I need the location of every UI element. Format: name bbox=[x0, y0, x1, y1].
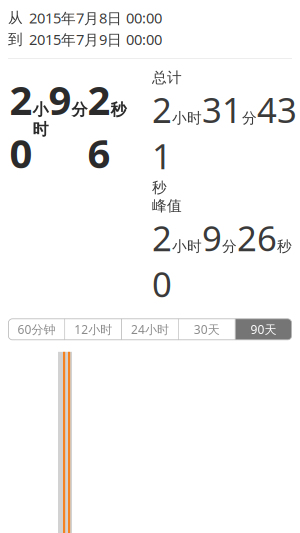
staticText: 分 bbox=[242, 109, 257, 127]
staticText: 90天 bbox=[251, 321, 277, 337]
staticText: 26 bbox=[237, 215, 277, 261]
staticText: 2015年7月8日 00:00 bbox=[29, 8, 162, 28]
staticText: 峰值 bbox=[152, 197, 182, 215]
staticText: 从 bbox=[8, 9, 23, 27]
staticText: 20 bbox=[9, 73, 32, 179]
staticText: 小时 bbox=[172, 109, 202, 127]
staticText: 分 bbox=[222, 237, 237, 255]
staticText: 26 bbox=[87, 73, 110, 179]
staticText: 小时 bbox=[32, 100, 48, 139]
staticText: 秒 bbox=[152, 179, 167, 197]
staticText: 到 bbox=[8, 30, 23, 48]
staticText: 21 bbox=[152, 87, 172, 179]
staticText: 24小时 bbox=[131, 321, 169, 337]
staticText: 20 bbox=[152, 215, 172, 307]
staticText: 小时 bbox=[172, 237, 202, 255]
button[interactable]: 30天 bbox=[179, 319, 235, 340]
staticText: 30天 bbox=[194, 321, 220, 337]
staticText: 9 bbox=[202, 215, 222, 261]
staticText: 43 bbox=[257, 87, 297, 133]
button[interactable]: 90天 bbox=[236, 319, 292, 340]
staticText: 31 bbox=[202, 87, 242, 133]
button[interactable]: 24小时 bbox=[122, 319, 178, 340]
button[interactable]: 60分钟 bbox=[8, 319, 64, 340]
staticText: 秒 bbox=[277, 237, 292, 255]
staticText: 秒 bbox=[110, 100, 126, 120]
staticText: 分 bbox=[71, 100, 87, 120]
staticText: 60分钟 bbox=[17, 321, 55, 337]
staticText: 9 bbox=[48, 73, 71, 126]
staticText: 总计 bbox=[152, 69, 182, 87]
staticText: 12小时 bbox=[74, 321, 112, 337]
staticText: 2015年7月9日 00:00 bbox=[29, 30, 162, 49]
button[interactable]: 12小时 bbox=[65, 319, 121, 340]
